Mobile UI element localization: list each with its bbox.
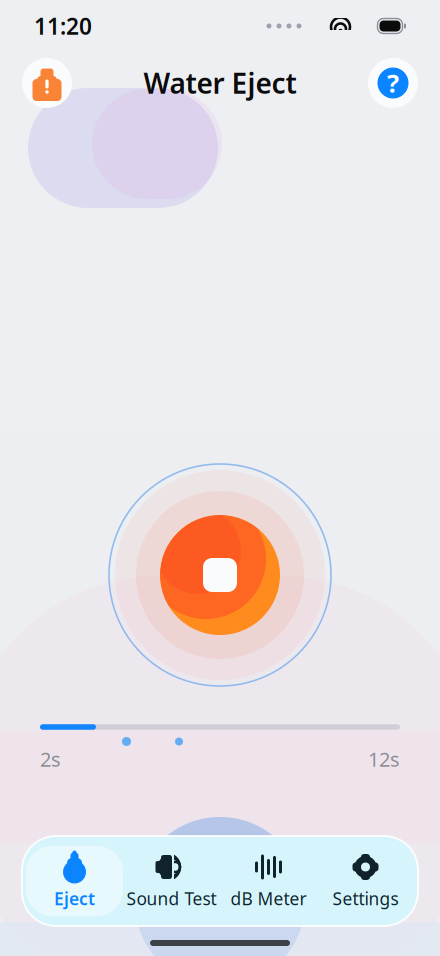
staticText: Sound Test (126, 887, 216, 910)
staticText: 12s (368, 746, 400, 772)
button[interactable]: Help (366, 56, 420, 110)
button[interactable]: Eject (26, 846, 123, 916)
staticText: 11:20 (34, 11, 92, 41)
button[interactable]: Sound Test (123, 846, 220, 916)
staticText: Water Eject (143, 64, 296, 102)
button[interactable]: Warning (20, 56, 74, 110)
button[interactable]: Settings (317, 846, 414, 916)
button[interactable]: Stop water eject (106, 461, 334, 689)
button[interactable]: dB Meter (220, 846, 317, 916)
staticText: dB Meter (230, 887, 306, 910)
staticText: ? (387, 66, 399, 100)
staticText: Settings (332, 887, 398, 910)
button[interactable]: Duration (40, 719, 400, 735)
staticText: Eject (54, 887, 95, 910)
staticText: 2s (40, 746, 61, 772)
